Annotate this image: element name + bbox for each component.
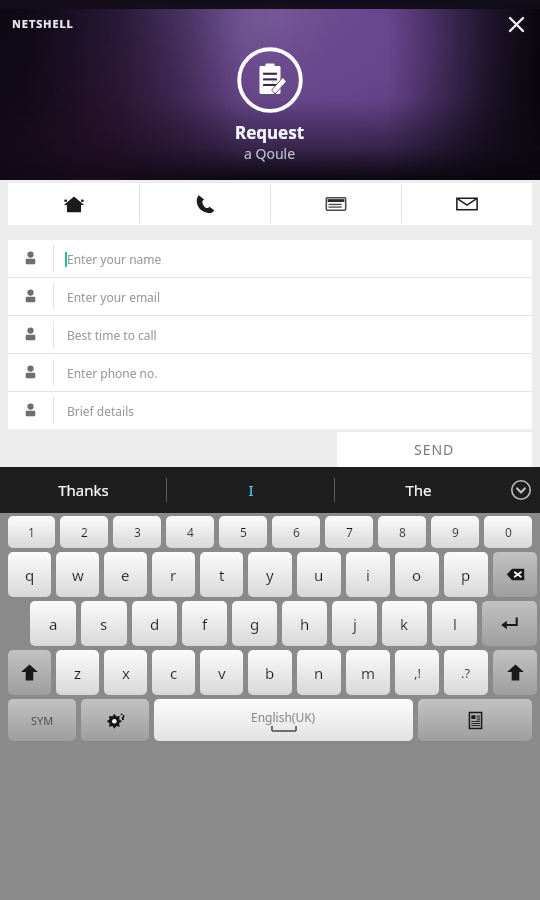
- button[interactable]: d: [132, 601, 177, 646]
- staticText: I: [248, 480, 254, 500]
- staticText: g: [250, 614, 260, 634]
- button[interactable]: v: [200, 650, 243, 695]
- button[interactable]: Thanks: [0, 467, 166, 513]
- staticText: 3: [134, 524, 141, 540]
- button[interactable]: 2: [60, 516, 108, 548]
- button[interactable]: Best time to call: [8, 316, 532, 353]
- staticText: c: [170, 663, 178, 683]
- staticText: i: [366, 565, 370, 585]
- button[interactable]: 6: [272, 516, 320, 548]
- staticText: o: [412, 565, 422, 585]
- button[interactable]: i: [346, 552, 390, 597]
- button[interactable]: a: [30, 601, 76, 646]
- button[interactable]: w: [56, 552, 99, 597]
- button[interactable]: s: [81, 601, 127, 646]
- button[interactable]: q: [8, 552, 51, 597]
- staticText: 5: [240, 524, 247, 540]
- staticText: Thanks: [58, 480, 109, 500]
- button[interactable]: 1: [8, 516, 55, 548]
- button[interactable]: Enter phone no.: [8, 354, 532, 391]
- staticText: n: [314, 663, 324, 683]
- button[interactable]: r: [152, 552, 195, 597]
- staticText: d: [150, 614, 160, 634]
- button[interactable]: x: [104, 650, 147, 695]
- button[interactable]: t: [200, 552, 243, 597]
- button[interactable]: u: [297, 552, 341, 597]
- button[interactable]: k: [382, 601, 427, 646]
- staticText: The: [405, 480, 432, 500]
- button[interactable]: o: [395, 552, 439, 597]
- button[interactable]: The: [335, 467, 502, 513]
- button[interactable]: g: [232, 601, 277, 646]
- button[interactable]: ,!: [395, 650, 439, 695]
- button[interactable]: l: [432, 601, 477, 646]
- button[interactable]: p: [444, 552, 488, 597]
- button[interactable]: 5: [219, 516, 267, 548]
- staticText: r: [170, 565, 177, 585]
- button[interactable]: More suggestions: [502, 467, 540, 513]
- button[interactable]: Enter: [482, 601, 537, 646]
- button[interactable]: Home: [8, 183, 139, 225]
- button[interactable]: h: [282, 601, 327, 646]
- staticText: q: [25, 565, 35, 585]
- button[interactable]: z: [56, 650, 99, 695]
- button[interactable]: f: [182, 601, 227, 646]
- button[interactable]: n: [297, 650, 341, 695]
- staticText: j: [353, 614, 357, 634]
- button[interactable]: I: [167, 467, 334, 513]
- staticText: h: [300, 614, 310, 634]
- button[interactable]: .?: [444, 650, 488, 695]
- staticText: .?: [461, 664, 471, 682]
- staticText: Enter your name: [67, 251, 162, 267]
- button[interactable]: Enter your name: [8, 240, 532, 277]
- button[interactable]: 4: [166, 516, 214, 548]
- button[interactable]: e: [104, 552, 147, 597]
- staticText: ,!: [414, 664, 421, 682]
- button[interactable]: Clipboard: [418, 699, 532, 741]
- staticText: SEND: [414, 440, 455, 459]
- staticText: 6: [293, 524, 300, 540]
- button[interactable]: y: [248, 552, 292, 597]
- staticText: 4: [187, 524, 194, 540]
- button[interactable]: SYM: [8, 699, 76, 741]
- button[interactable]: Call: [140, 183, 270, 225]
- button[interactable]: Enter your email: [8, 278, 532, 315]
- button[interactable]: Input settings: [81, 699, 149, 741]
- staticText: 8: [399, 524, 406, 540]
- button[interactable]: Shift: [8, 650, 51, 695]
- button[interactable]: c: [152, 650, 195, 695]
- button[interactable]: Brief details: [8, 392, 532, 429]
- staticText: f: [202, 614, 208, 634]
- button[interactable]: Mail: [402, 183, 532, 225]
- button[interactable]: 9: [431, 516, 479, 548]
- button[interactable]: Space: [154, 699, 413, 741]
- button[interactable]: News: [271, 183, 401, 225]
- staticText: t: [219, 565, 225, 585]
- button[interactable]: j: [332, 601, 377, 646]
- button[interactable]: Backspace: [493, 552, 537, 597]
- staticText: s: [100, 614, 108, 634]
- button[interactable]: Request a Qoule: [235, 45, 305, 115]
- button[interactable]: 3: [113, 516, 161, 548]
- button[interactable]: Shift: [493, 650, 537, 695]
- staticText: Request: [235, 121, 305, 144]
- staticText: m: [361, 663, 376, 683]
- button[interactable]: 0: [484, 516, 532, 548]
- staticText: 2: [81, 524, 88, 540]
- staticText: Enter phone no.: [67, 365, 158, 381]
- staticText: w: [72, 565, 84, 585]
- button[interactable]: m: [346, 650, 390, 695]
- button[interactable]: Close: [498, 6, 534, 42]
- staticText: e: [121, 565, 130, 585]
- staticText: 7: [346, 524, 353, 540]
- staticText: a Qoule: [244, 144, 296, 163]
- staticText: 0: [505, 524, 512, 540]
- staticText: x: [122, 663, 130, 683]
- staticText: 1: [28, 524, 35, 540]
- staticText: v: [218, 663, 226, 683]
- button[interactable]: 8: [378, 516, 426, 548]
- staticText: k: [400, 614, 409, 634]
- button[interactable]: b: [248, 650, 292, 695]
- button[interactable]: SEND: [337, 432, 532, 467]
- button[interactable]: 7: [325, 516, 373, 548]
